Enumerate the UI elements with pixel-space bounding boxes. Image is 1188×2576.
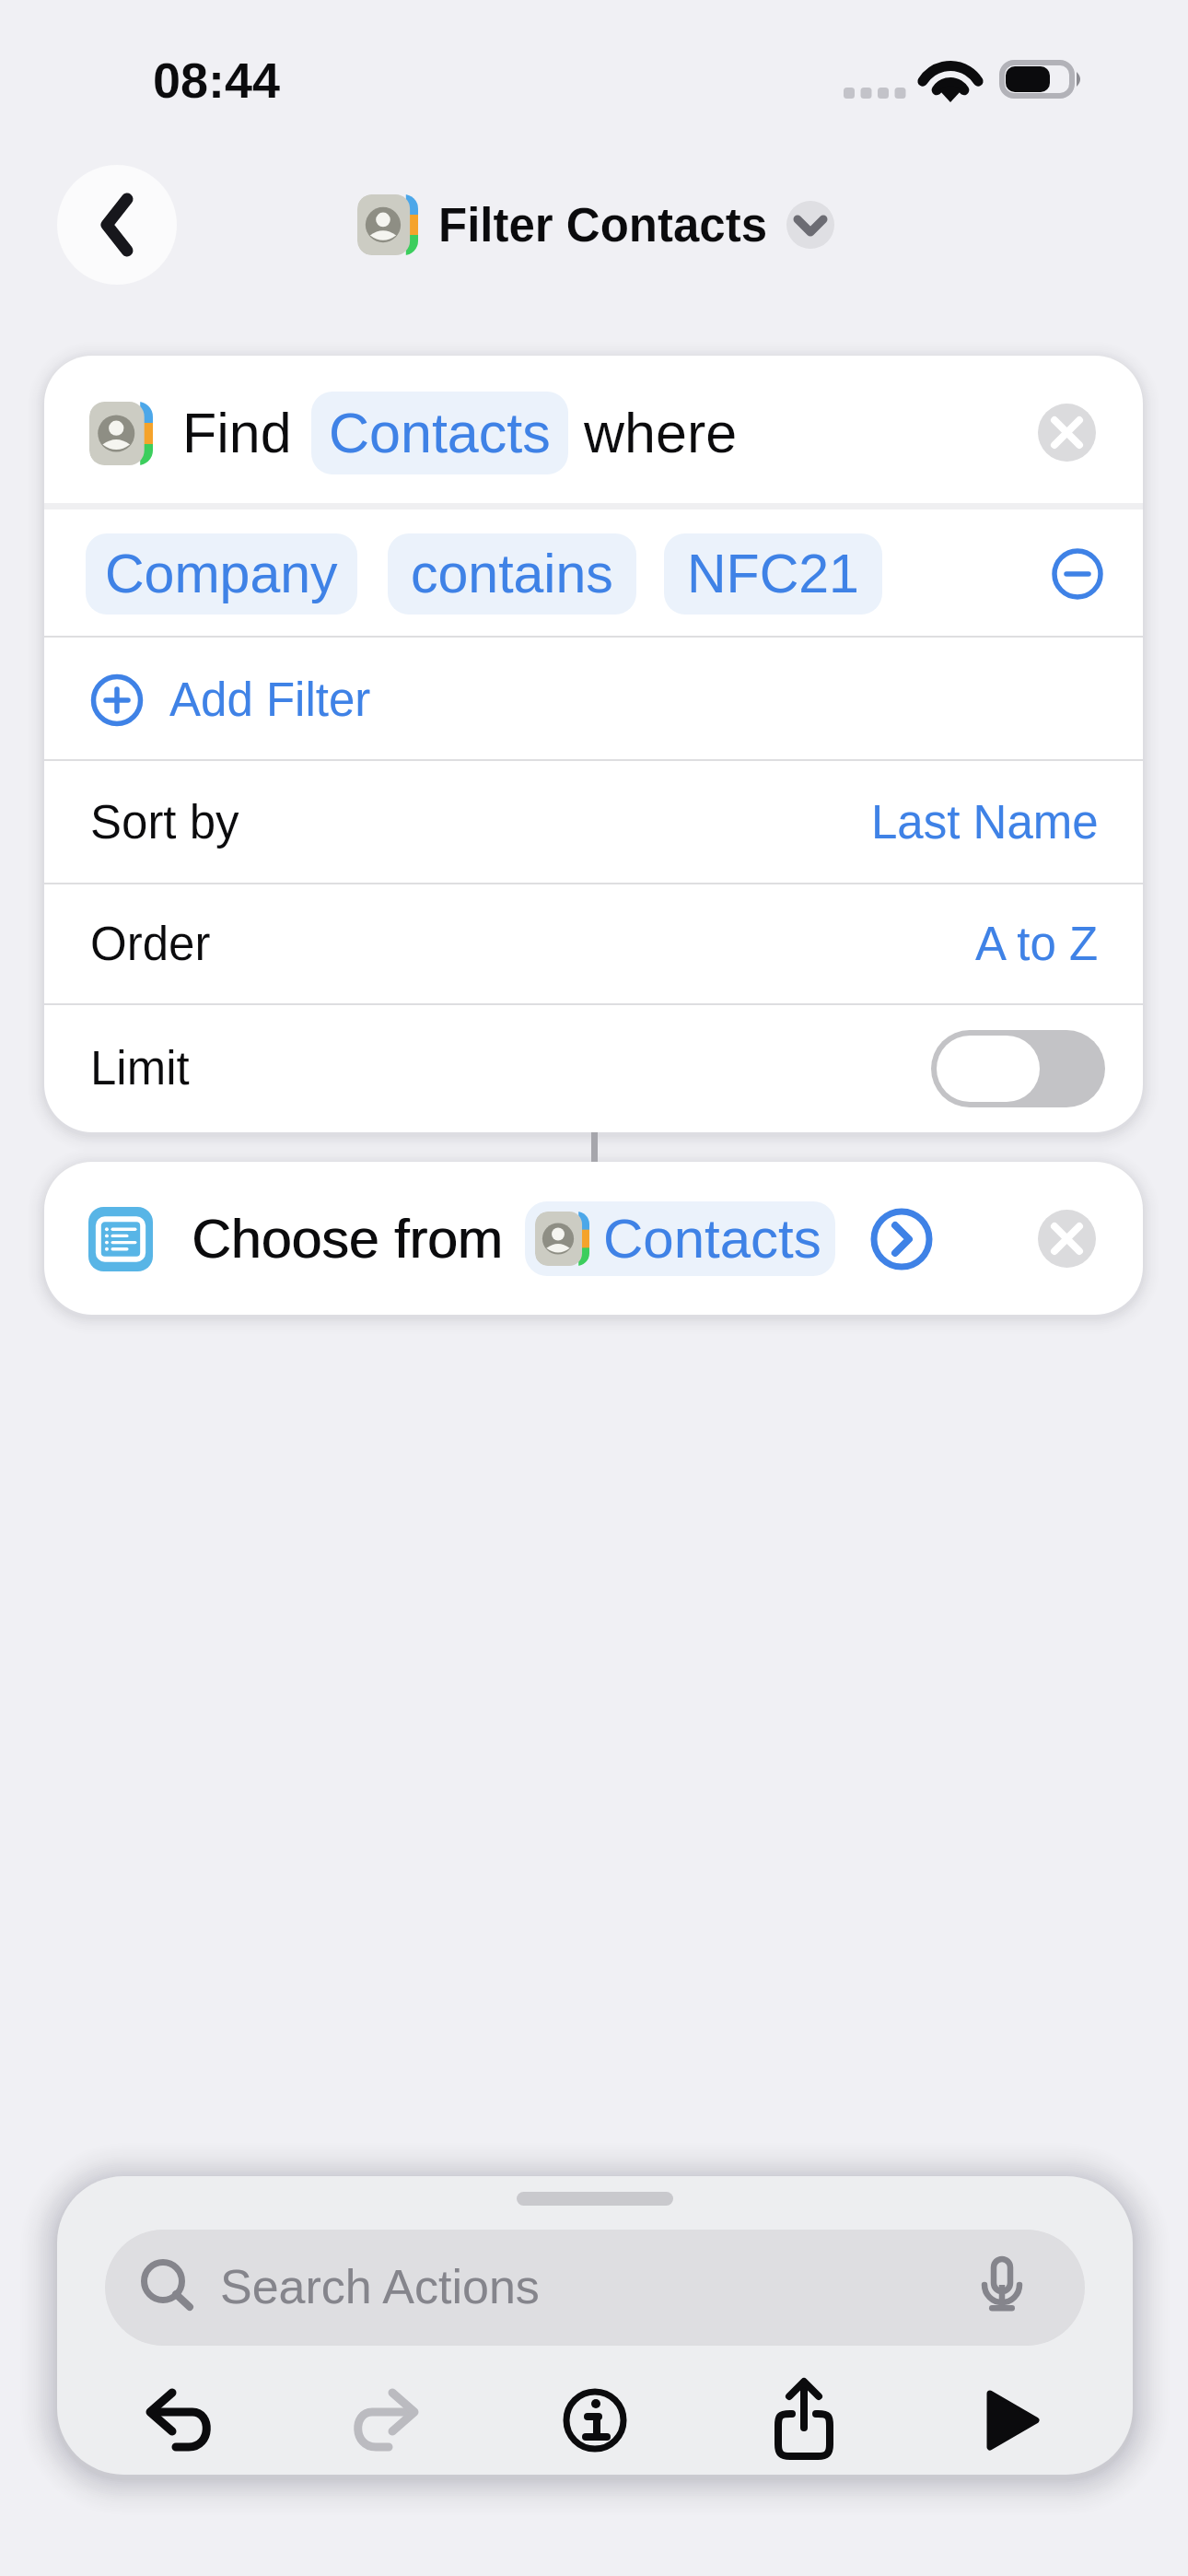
staticText: A to Z	[975, 918, 1099, 970]
staticText: Filter Contacts	[438, 199, 768, 252]
button[interactable]: Back	[57, 165, 177, 285]
button[interactable]: Remove filter	[1052, 548, 1103, 600]
staticText: Contacts	[603, 1208, 821, 1270]
button[interactable]: Add Filter	[44, 638, 1143, 761]
staticText: Add Filter	[169, 673, 371, 726]
button[interactable]: Company	[44, 509, 1143, 638]
button[interactable]: More options	[786, 201, 834, 249]
button[interactable]: contains	[388, 533, 636, 615]
staticText: Contacts	[329, 402, 551, 464]
staticText: Sort by	[90, 796, 239, 849]
button[interactable]: Remove action	[1038, 1210, 1096, 1268]
button[interactable]: Limit toggle	[931, 1030, 1105, 1107]
button[interactable]: Info	[544, 2370, 646, 2471]
staticText: Choose from	[192, 1209, 503, 1270]
button[interactable]: Redo	[336, 2370, 437, 2471]
staticText: where	[584, 402, 738, 464]
button[interactable]: Contacts	[525, 1201, 835, 1276]
button[interactable]: Choose from	[44, 1162, 1143, 1315]
staticText: NFC21	[687, 544, 859, 604]
staticText: Last Name	[871, 796, 1099, 849]
staticText: Search Actions	[220, 2260, 540, 2313]
staticText: contains	[411, 544, 613, 604]
button[interactable]: Undo	[127, 2370, 228, 2471]
button[interactable]: Order	[44, 884, 1143, 1005]
staticText: Order	[90, 918, 211, 970]
button[interactable]: Remove action	[1038, 404, 1096, 462]
button[interactable]: Contacts	[311, 392, 568, 474]
button[interactable]: Limit	[44, 1005, 1143, 1132]
button[interactable]: Run	[961, 2370, 1063, 2471]
button[interactable]: Find	[44, 356, 1143, 509]
staticText: Limit	[90, 1042, 190, 1095]
staticText: Choose from	[192, 1209, 504, 1270]
staticText: Find	[182, 402, 292, 464]
button[interactable]: Search Actions	[105, 2230, 1085, 2346]
staticText: Company	[105, 544, 338, 604]
button[interactable]: Open	[874, 1212, 929, 1267]
button[interactable]: Share	[753, 2370, 855, 2471]
staticText: 08:44	[153, 53, 281, 108]
button[interactable]: NFC21	[664, 533, 882, 615]
button[interactable]: Sort by	[44, 761, 1143, 884]
button[interactable]: Company	[86, 533, 357, 615]
